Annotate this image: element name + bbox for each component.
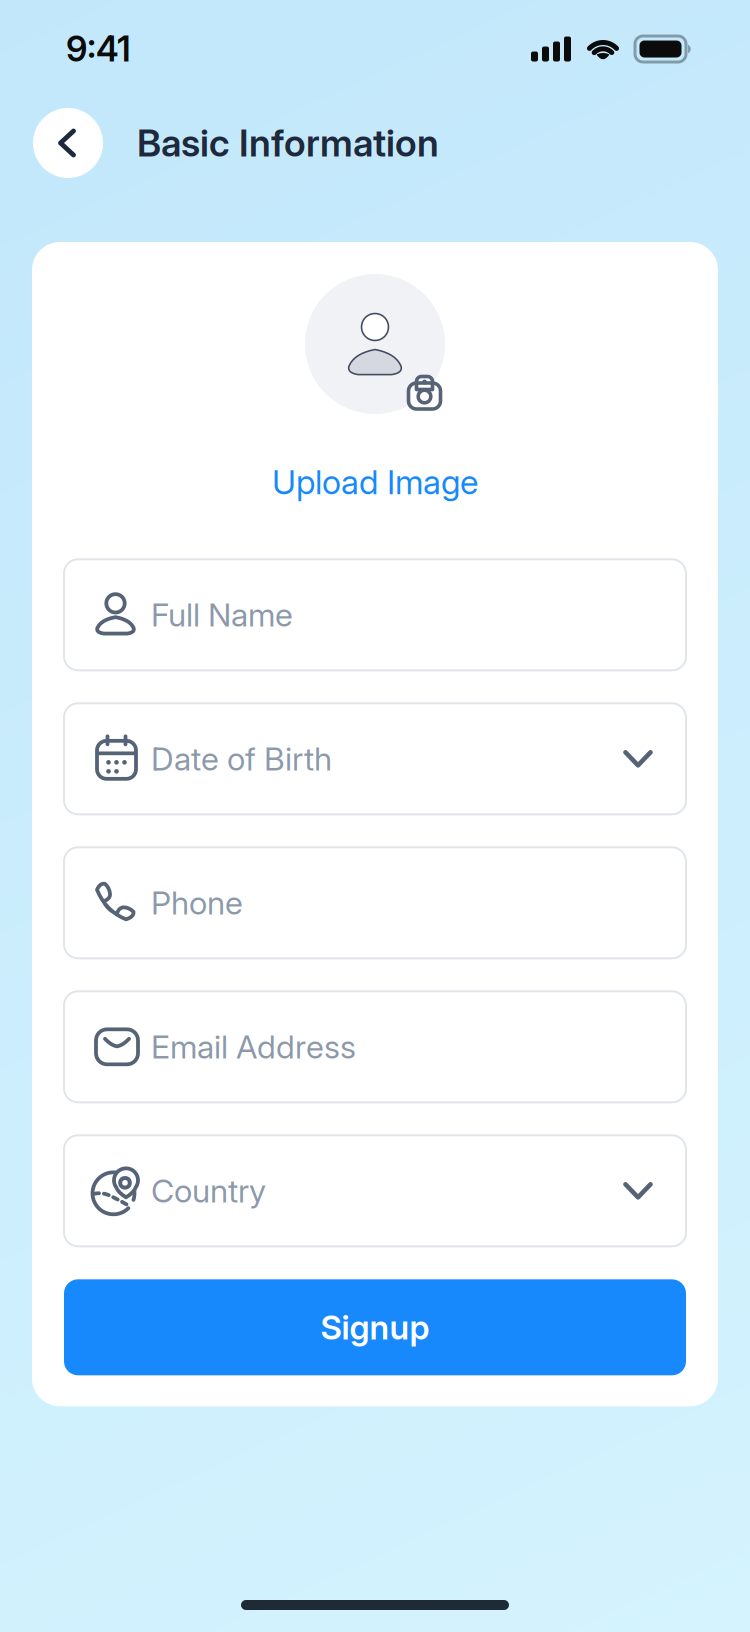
button[interactable]: Email Address: [64, 991, 686, 1102]
button[interactable]: Upload Image: [272, 414, 478, 516]
button[interactable]: Back: [33, 108, 103, 178]
button[interactable]: Country: [64, 1135, 686, 1246]
staticText: Full Name: [151, 595, 293, 634]
staticText: 9:41: [66, 28, 131, 70]
button[interactable]: Full Name: [64, 559, 686, 670]
staticText: Basic Information: [137, 120, 439, 166]
staticText: Phone: [151, 883, 243, 922]
button[interactable]: Date of Birth: [64, 703, 686, 814]
staticText: Signup: [320, 1307, 429, 1347]
button[interactable]: Change profile photo: [305, 274, 445, 414]
staticText: Email Address: [151, 1027, 356, 1066]
staticText: Upload Image: [272, 462, 478, 502]
staticText: Country: [151, 1171, 266, 1210]
button[interactable]: Phone: [64, 847, 686, 958]
button[interactable]: Signup: [64, 1279, 686, 1375]
staticText: Date of Birth: [151, 739, 332, 778]
